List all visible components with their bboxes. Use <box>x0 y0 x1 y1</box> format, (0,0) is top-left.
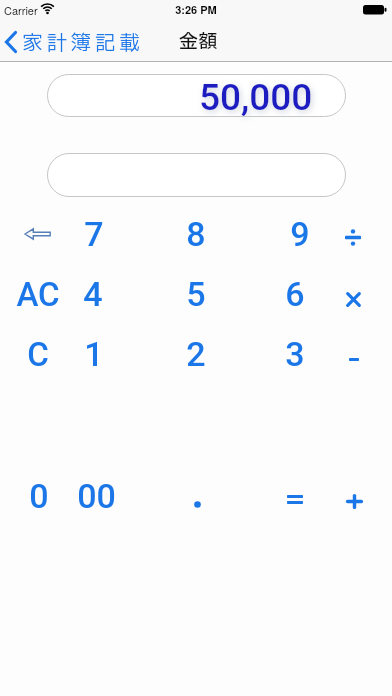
button[interactable]: C <box>0 329 78 379</box>
button[interactable]: 4 <box>53 269 133 319</box>
button[interactable]: 1 <box>54 329 134 379</box>
button[interactable] <box>267 477 323 521</box>
button[interactable] <box>326 337 382 381</box>
button[interactable]: 3 <box>255 329 335 379</box>
staticText: 3:26 PM <box>175 2 217 18</box>
button[interactable] <box>9 212 65 256</box>
button[interactable]: AC <box>0 269 78 319</box>
button[interactable]: 50,000 <box>47 74 346 117</box>
staticText: 1 <box>84 334 104 374</box>
staticText: 50,000 <box>199 76 313 119</box>
staticText: 0 <box>29 476 49 516</box>
staticText: 家計簿記載 <box>22 28 144 59</box>
staticText: Carrier <box>4 2 38 18</box>
staticText: AC <box>16 275 60 314</box>
staticText: 4 <box>83 274 103 314</box>
staticText: 2 <box>186 334 206 374</box>
button[interactable]: 7 <box>54 209 134 259</box>
button[interactable] <box>325 215 381 259</box>
button[interactable] <box>325 277 381 321</box>
staticText: 7 <box>84 214 104 254</box>
staticText: 00 <box>77 476 116 516</box>
button[interactable] <box>326 479 382 523</box>
staticText: C <box>27 335 49 374</box>
staticText: 5 <box>186 274 206 314</box>
staticText: 6 <box>285 274 305 314</box>
staticText: 金額 <box>179 28 219 56</box>
button[interactable]: 2 <box>156 329 236 379</box>
button[interactable]: 0 <box>0 471 79 521</box>
button[interactable]: 家計簿記載 <box>2 26 150 58</box>
button[interactable]: 00 <box>56 471 136 521</box>
staticText: 8 <box>186 214 206 254</box>
button[interactable]: 5 <box>156 269 236 319</box>
button[interactable]: 9 <box>260 209 340 259</box>
button[interactable] <box>47 153 346 197</box>
staticText: 3 <box>285 334 305 374</box>
button[interactable]: 8 <box>156 209 236 259</box>
staticText: 9 <box>290 214 310 254</box>
button[interactable] <box>169 482 225 526</box>
button[interactable]: 6 <box>255 269 335 319</box>
